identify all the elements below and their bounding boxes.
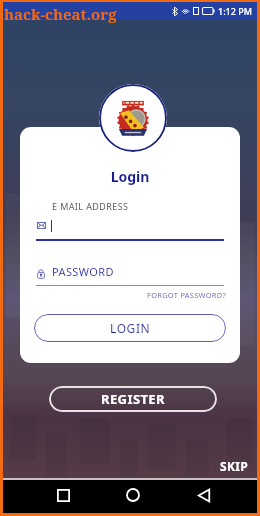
staticText: hack-cheat.org xyxy=(4,4,117,24)
staticText: Login xyxy=(20,167,240,186)
button[interactable]: Back xyxy=(192,483,216,507)
staticText: PASSWORD xyxy=(52,264,114,279)
staticText: LOGIN xyxy=(110,320,151,336)
staticText: E MAIL ADDRESS xyxy=(52,200,129,212)
button[interactable]: LOGIN xyxy=(34,314,226,342)
button[interactable]: FORGOT PASSWORD? xyxy=(147,290,226,300)
button[interactable]: REGISTER xyxy=(49,386,217,412)
staticText: SKIP xyxy=(220,458,248,474)
button[interactable]: SKIP xyxy=(217,455,251,477)
button[interactable]: Recent apps xyxy=(51,483,75,507)
staticText: REGISTER xyxy=(101,390,165,408)
button[interactable]: Home xyxy=(121,483,145,507)
staticText: 1:12 PM xyxy=(218,5,252,17)
